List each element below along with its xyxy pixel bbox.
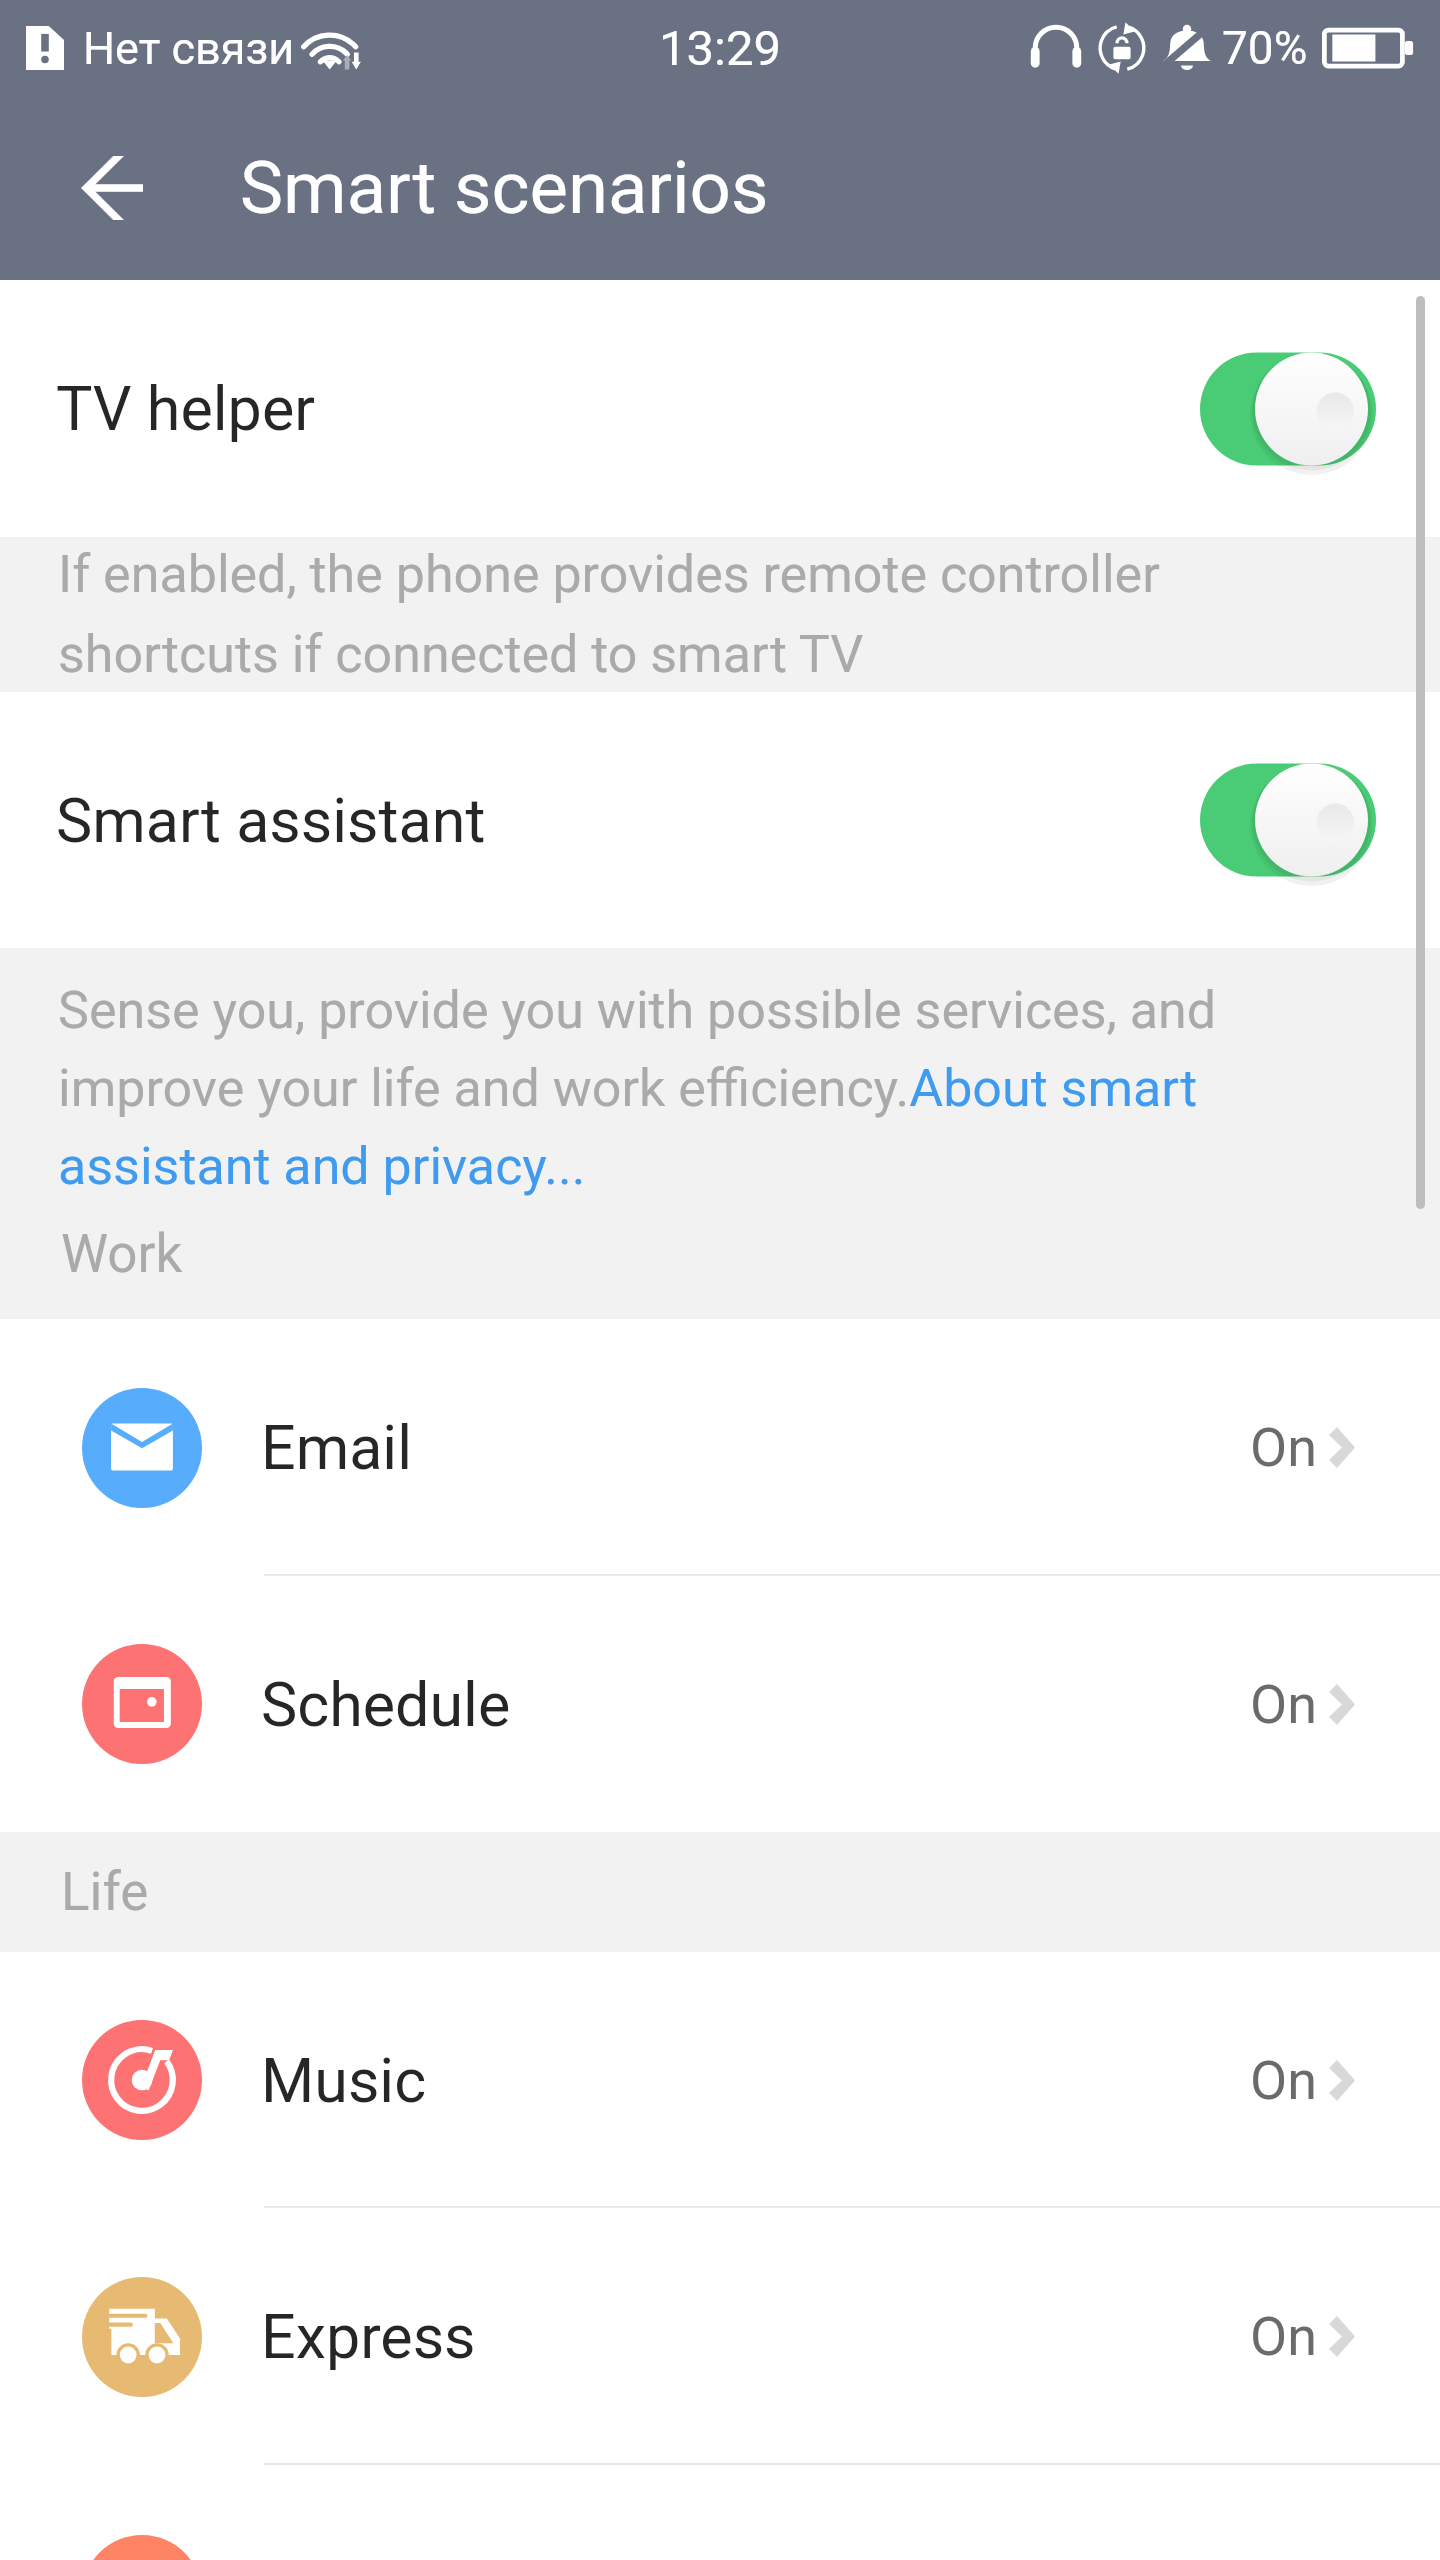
button[interactable]: Smart assistant (0, 692, 1440, 948)
button[interactable] (0, 2465, 1440, 2560)
button[interactable]: Express (0, 2208, 1440, 2465)
button[interactable]: Music (0, 1952, 1440, 2208)
staticText: Email (261, 1412, 413, 1483)
button[interactable]: TV helper switch, on (1200, 347, 1376, 471)
staticText: 13:29 (659, 20, 782, 77)
staticText: 70% (1222, 21, 1308, 75)
staticText: Schedule (261, 1669, 511, 1740)
staticText: Music (261, 2045, 427, 2116)
staticText: If enabled, the phone provides remote co… (58, 544, 1160, 685)
button[interactable]: Back (42, 118, 182, 258)
staticText: Express (261, 2301, 476, 2372)
staticText: Smart assistant (56, 785, 486, 856)
staticText: On (1250, 2305, 1317, 2368)
staticText: Нет связи (83, 22, 295, 75)
button[interactable]: TV helper (0, 280, 1440, 537)
staticText: On (1250, 1673, 1317, 1736)
staticText: Smart scenarios (240, 146, 769, 231)
staticText: On (1250, 1416, 1317, 1479)
button[interactable]: Email (0, 1319, 1440, 1576)
staticText: Life (61, 1861, 149, 1923)
staticText: On (1250, 2049, 1317, 2112)
button[interactable]: About smart assistant and privacy... (58, 1073, 1213, 1203)
button[interactable]: Schedule (0, 1576, 1440, 1832)
staticText: Sense you, provide you with possible ser… (58, 980, 1216, 1196)
staticText: TV helper (56, 373, 315, 444)
staticText: Work (61, 1223, 183, 1285)
button[interactable]: Smart assistant switch, on (1200, 758, 1376, 882)
